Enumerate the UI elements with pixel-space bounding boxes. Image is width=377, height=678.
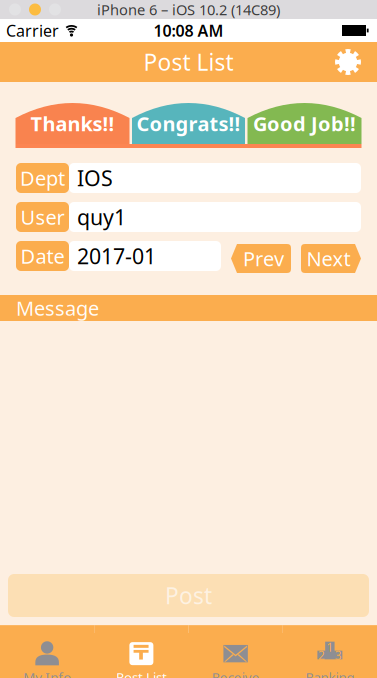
staticText: Good Job!!: [253, 110, 356, 137]
button[interactable]: IOS: [69, 163, 361, 193]
button[interactable]: Next: [301, 244, 361, 273]
button[interactable]: Prev: [231, 244, 291, 273]
staticText: Post List: [143, 47, 233, 77]
staticText: 1: [326, 639, 333, 655]
staticText: Message: [16, 295, 99, 321]
button[interactable]: 1: [283, 633, 377, 678]
button[interactable]: My Info: [0, 633, 94, 678]
staticText: My Info: [23, 668, 71, 678]
staticText: 10:08 AM: [153, 20, 223, 41]
staticText: Carrier: [6, 20, 59, 41]
button[interactable]: quy1: [69, 202, 361, 232]
button[interactable]: 2017-01: [69, 241, 221, 271]
staticText: Prev: [243, 245, 284, 272]
staticText: quy1: [77, 203, 126, 231]
staticText: 2: [318, 647, 325, 663]
button[interactable]: Congrats!!: [132, 103, 245, 144]
staticText: User: [20, 204, 64, 230]
staticText: 2017-01: [77, 242, 156, 270]
staticText: Date: [20, 243, 64, 269]
staticText: Post List: [116, 668, 167, 678]
staticText: Dept: [20, 165, 65, 191]
staticText: Congrats!!: [136, 110, 240, 137]
staticText: Receive: [212, 668, 260, 678]
button[interactable]: Receive: [188, 633, 283, 678]
staticText: Thanks!!: [30, 110, 114, 137]
staticText: iPhone 6 – iOS 10.2 (14C89): [97, 0, 280, 19]
staticText: Ranking: [305, 668, 354, 678]
staticText: IOS: [77, 164, 113, 192]
button[interactable]: Post: [8, 574, 369, 617]
button[interactable]: Settings: [326, 42, 370, 82]
button[interactable]: Post List: [94, 633, 188, 678]
staticText: Post: [165, 580, 212, 610]
staticText: 3: [335, 647, 342, 663]
button[interactable]: Good Job!!: [247, 103, 361, 144]
button[interactable]: Thanks!!: [15, 103, 129, 144]
staticText: Next: [306, 245, 350, 272]
